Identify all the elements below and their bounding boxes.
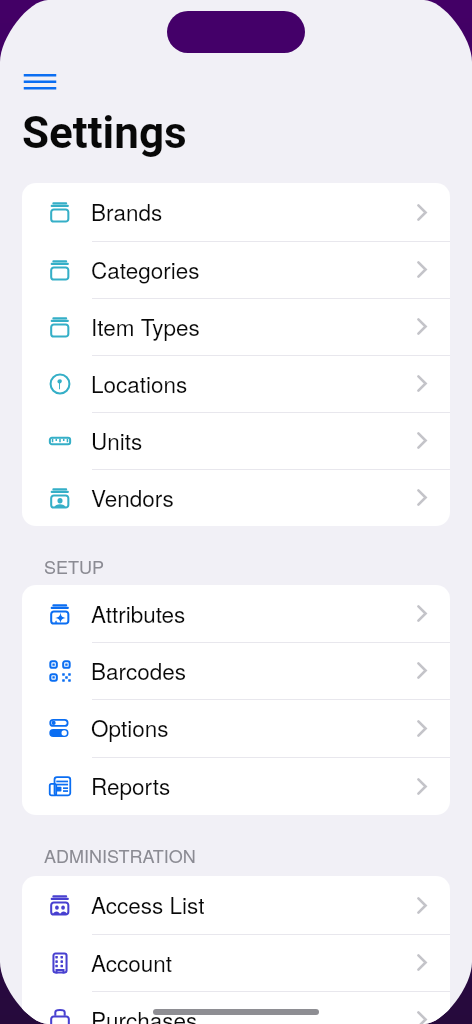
staticText: Barcodes: [91, 654, 186, 686]
button[interactable]: Barcodes: [22, 642, 450, 699]
button[interactable]: Units: [22, 412, 450, 469]
button[interactable]: Account: [22, 934, 450, 991]
staticText: Vendors: [91, 481, 174, 513]
button[interactable]: Reports: [22, 757, 450, 815]
button[interactable]: Item Types: [22, 298, 450, 355]
staticText: Locations: [91, 367, 188, 399]
button[interactable]: Open navigation menu: [11, 64, 69, 100]
button[interactable]: Attributes: [22, 585, 450, 642]
staticText: Settings: [22, 107, 187, 159]
button[interactable]: Vendors: [22, 469, 450, 526]
button[interactable]: Options: [22, 699, 450, 757]
staticText: Item Types: [91, 310, 200, 342]
staticText: Categories: [91, 253, 200, 285]
staticText: Account: [91, 946, 173, 978]
staticText: Purchases: [91, 1003, 198, 1024]
button[interactable]: Categories: [22, 241, 450, 298]
staticText: SETUP: [44, 553, 105, 579]
button[interactable]: Access List: [22, 876, 450, 934]
button[interactable]: Purchases: [22, 991, 450, 1024]
button[interactable]: Locations: [22, 355, 450, 412]
staticText: ADMINISTRATION: [44, 842, 196, 868]
staticText: Options: [91, 711, 169, 743]
staticText: Attributes: [91, 597, 186, 629]
staticText: Units: [91, 424, 143, 456]
staticText: Access List: [91, 888, 205, 920]
staticText: Brands: [91, 195, 163, 227]
button[interactable]: Brands: [22, 183, 450, 241]
staticText: Reports: [91, 769, 171, 801]
